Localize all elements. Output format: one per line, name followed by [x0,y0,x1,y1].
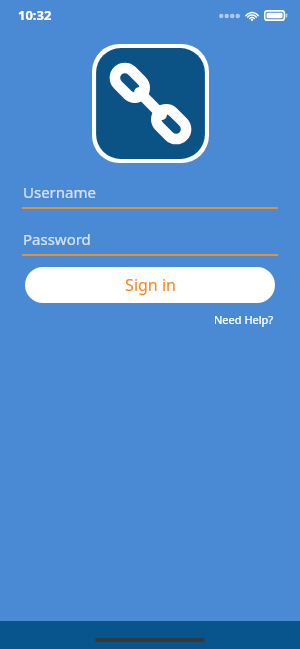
button[interactable]: Need Help? [210,308,278,331]
staticText: Password [23,229,91,249]
button[interactable]: Password [22,229,278,256]
other: App logo [92,44,209,163]
staticText: 10:32 [18,6,52,24]
staticText: Need Help? [214,312,274,327]
button[interactable]: Username [22,182,278,209]
staticText: Username [23,182,96,202]
button[interactable]: Sign in [25,267,275,303]
staticText: Sign in [125,274,176,296]
